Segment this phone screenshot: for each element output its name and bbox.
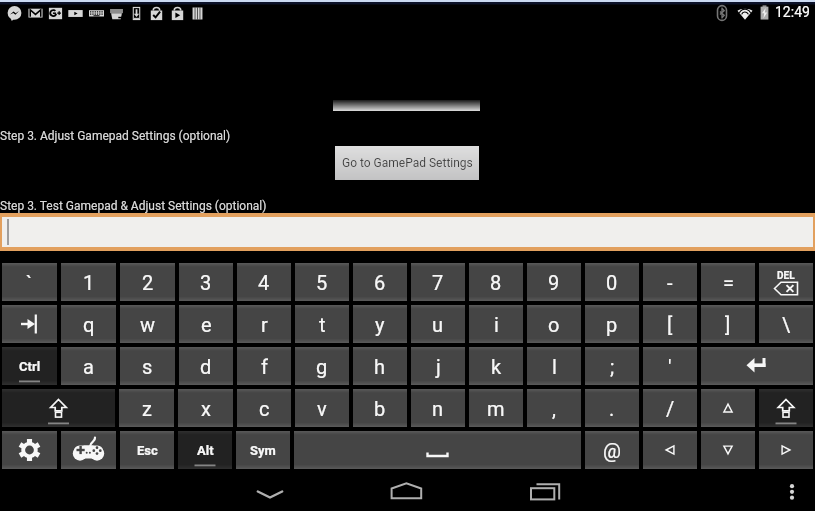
button[interactable]: 2: [120, 263, 175, 301]
button[interactable]: Shift: [2, 389, 115, 427]
button[interactable]: y: [353, 305, 407, 343]
button[interactable]: p: [585, 305, 639, 343]
button[interactable]: t: [295, 305, 349, 343]
button[interactable]: d: [179, 347, 233, 385]
button[interactable]: Delete: [759, 263, 813, 301]
button[interactable]: 4: [237, 263, 291, 301]
staticText: 1: [83, 271, 95, 294]
staticText: x: [201, 397, 211, 420]
staticText: ;: [610, 355, 615, 378]
button[interactable]: v: [295, 389, 349, 427]
staticText: Ctrl: [19, 359, 41, 374]
button[interactable]: x: [178, 389, 233, 427]
button[interactable]: j: [411, 347, 465, 385]
button[interactable]: Arrow up: [701, 389, 755, 427]
button[interactable]: n: [411, 389, 465, 427]
button[interactable]: Go to GamePad Settings: [335, 146, 479, 180]
button[interactable]: 0: [585, 263, 639, 301]
button[interactable]: Arrow down: [701, 431, 755, 469]
button[interactable]: `: [2, 263, 57, 301]
button[interactable]: 5: [295, 263, 349, 301]
button[interactable]: w: [120, 305, 175, 343]
staticText: i: [494, 313, 499, 336]
button[interactable]: 3: [179, 263, 233, 301]
staticText: Step 3. Adjust Gamepad Settings (optiona…: [0, 129, 231, 143]
button[interactable]: ,: [527, 389, 581, 427]
button[interactable]: .: [585, 389, 639, 427]
staticText: t: [319, 313, 326, 336]
button[interactable]: 1: [61, 263, 116, 301]
button[interactable]: [2, 217, 813, 247]
staticText: -: [667, 271, 673, 294]
button[interactable]: 6: [353, 263, 407, 301]
button[interactable]: m: [469, 389, 523, 427]
button[interactable]: Hide keyboard: [250, 474, 290, 511]
button[interactable]: z: [119, 389, 174, 427]
button[interactable]: g: [295, 347, 349, 385]
staticText: 6: [374, 271, 386, 294]
staticText: Sym: [250, 443, 276, 458]
staticText: j: [436, 355, 441, 378]
button[interactable]: b: [353, 389, 407, 427]
staticText: f: [261, 355, 268, 378]
button[interactable]: /: [643, 389, 697, 427]
staticText: Esc: [137, 443, 158, 458]
button[interactable]: l: [527, 347, 581, 385]
button[interactable]: Alt: [178, 431, 232, 469]
button[interactable]: u: [411, 305, 465, 343]
staticText: \: [782, 313, 791, 336]
button[interactable]: Recent apps: [525, 474, 565, 511]
button[interactable]: Previous step: [333, 100, 480, 111]
button[interactable]: Arrow left: [643, 431, 697, 469]
button[interactable]: q: [61, 305, 116, 343]
button[interactable]: a: [61, 347, 116, 385]
staticText: y: [375, 313, 385, 336]
button[interactable]: Tab: [2, 305, 57, 343]
button[interactable]: i: [469, 305, 523, 343]
button[interactable]: ]: [701, 305, 755, 343]
button[interactable]: c: [237, 389, 291, 427]
button[interactable]: ': [643, 347, 697, 385]
staticText: ': [668, 355, 672, 378]
button[interactable]: Shift: [759, 389, 813, 427]
button[interactable]: 9: [527, 263, 581, 301]
button[interactable]: -: [643, 263, 697, 301]
staticText: 4: [258, 271, 270, 294]
button[interactable]: @: [585, 431, 639, 469]
button[interactable]: Home: [386, 474, 426, 511]
staticText: m: [487, 397, 505, 420]
staticText: v: [317, 397, 327, 420]
button[interactable]: More options: [776, 474, 808, 506]
staticText: c: [259, 397, 270, 420]
staticText: n: [432, 397, 444, 420]
button[interactable]: 7: [411, 263, 465, 301]
staticText: h: [374, 355, 386, 378]
button[interactable]: Ctrl: [2, 347, 57, 385]
staticText: @: [603, 439, 621, 462]
button[interactable]: =: [701, 263, 755, 301]
staticText: s: [142, 355, 153, 378]
button[interactable]: e: [179, 305, 233, 343]
button[interactable]: k: [469, 347, 523, 385]
button[interactable]: s: [120, 347, 175, 385]
button[interactable]: \: [759, 305, 813, 343]
button[interactable]: ;: [585, 347, 639, 385]
button[interactable]: f: [237, 347, 291, 385]
button[interactable]: Sym: [236, 431, 290, 469]
button[interactable]: Space: [294, 431, 581, 469]
staticText: 5: [316, 271, 328, 294]
button[interactable]: Enter: [701, 347, 813, 385]
button[interactable]: Esc: [120, 431, 174, 469]
button[interactable]: [: [643, 305, 697, 343]
staticText: Step 3. Test Gamepad & Adjust Settings (…: [0, 199, 267, 213]
staticText: d: [200, 355, 212, 378]
button[interactable]: Gamepad: [61, 431, 116, 469]
staticText: =: [723, 271, 734, 294]
button[interactable]: h: [353, 347, 407, 385]
button[interactable]: 8: [469, 263, 523, 301]
button[interactable]: Settings: [2, 431, 57, 469]
button[interactable]: Arrow right: [759, 431, 813, 469]
staticText: q: [83, 313, 95, 336]
button[interactable]: o: [527, 305, 581, 343]
button[interactable]: r: [237, 305, 291, 343]
